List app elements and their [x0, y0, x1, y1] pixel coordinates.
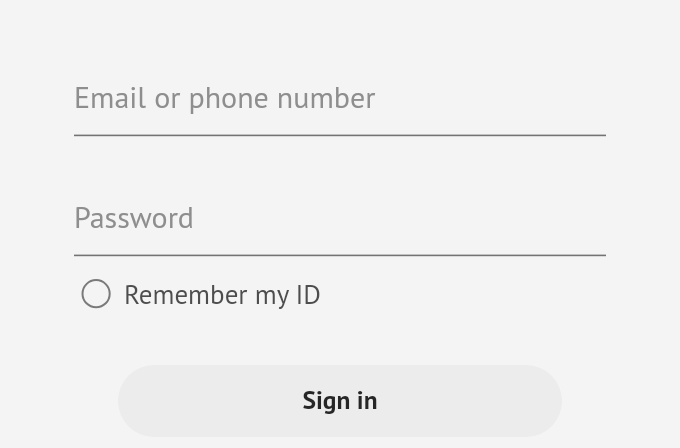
staticText: Remember my ID	[124, 277, 321, 312]
staticText: Sign in	[302, 383, 378, 416]
other: Remember my ID	[80, 279, 111, 310]
button[interactable]: Password	[74, 190, 606, 259]
button[interactable]: Sign in	[118, 365, 562, 437]
button[interactable]: Remember my ID	[80, 272, 321, 316]
staticText: Password	[74, 197, 194, 236]
staticText: Email or phone number	[74, 77, 376, 116]
button[interactable]: Email or phone number	[74, 70, 606, 139]
